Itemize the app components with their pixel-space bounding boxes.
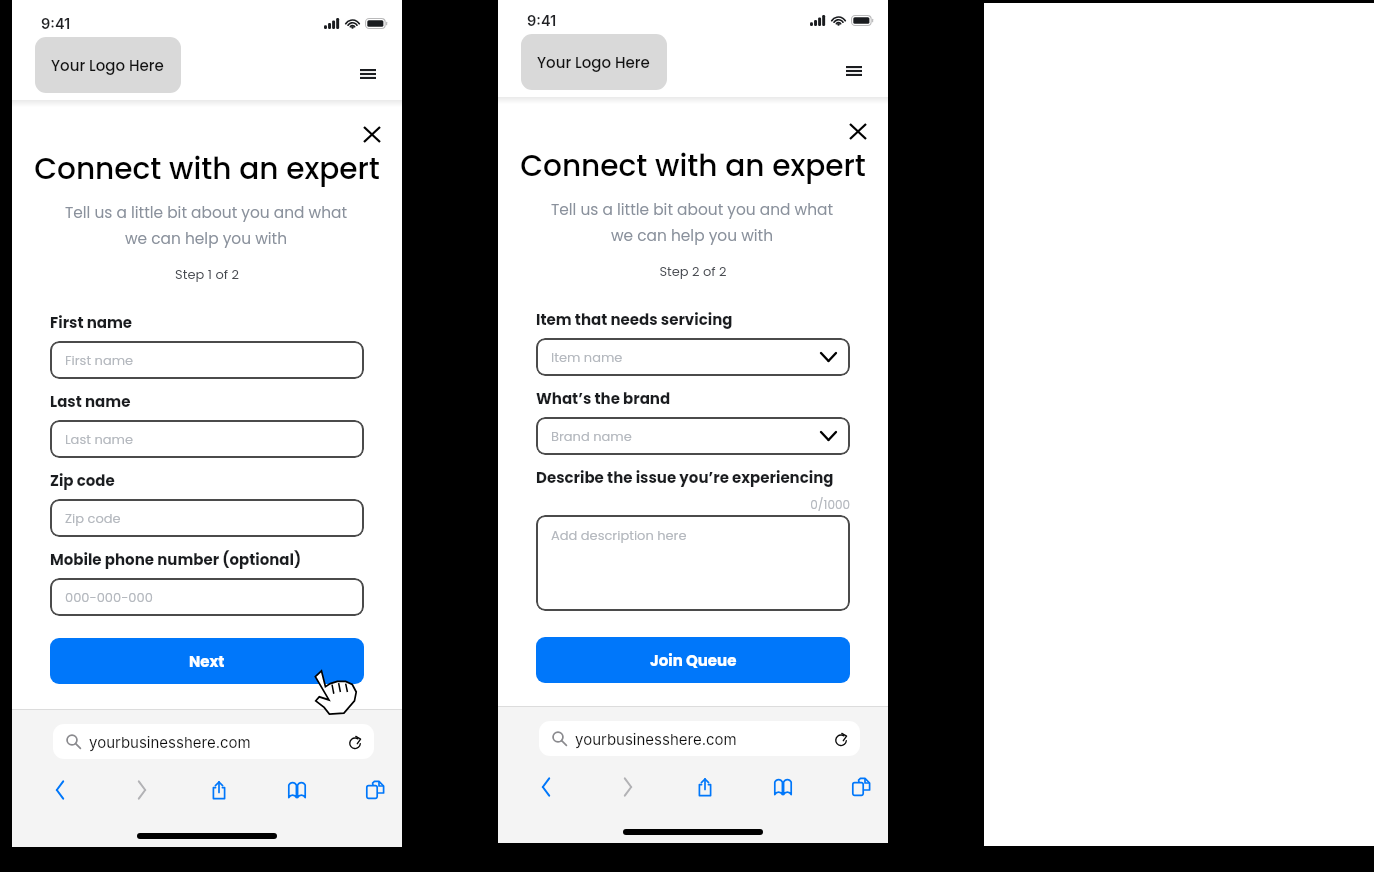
staticText: Your Logo Here [537,52,650,73]
staticText: yourbusinesshere.com [575,730,737,748]
staticText: Step 1 of 2 [12,265,402,283]
button[interactable]: Share [693,775,717,799]
staticText: First name [50,312,133,333]
button[interactable]: Reload [345,731,367,753]
staticText: Next [189,651,225,672]
button[interactable]: Join Queue [536,637,850,683]
button[interactable]: Reload [831,728,853,750]
staticText: Join Queue [650,650,737,671]
button[interactable]: First name [50,341,364,379]
button[interactable]: Brand name [536,417,850,455]
staticText: Last name [65,430,133,448]
staticText: Tell us a little bit about you and what … [543,199,841,246]
button[interactable]: Close [358,120,386,148]
staticText: Tell us a little bit about you and what … [57,202,355,249]
button[interactable]: Bookmarks [771,775,795,799]
staticText: Mobile phone number (optional) [50,549,302,570]
button[interactable]: Close [844,117,872,145]
button[interactable]: Back [534,775,558,799]
staticText: Step 2 of 2 [498,262,888,280]
staticText: Zip code [50,470,115,491]
staticText: Connect with an expert [12,148,402,189]
staticText: Last name [50,391,131,412]
staticText: Add description here [551,526,687,544]
button[interactable]: Your Logo Here [35,37,181,93]
staticText: Item that needs servicing [536,309,733,330]
staticText: Brand name [551,427,632,445]
staticText: 9:41 [41,15,71,33]
button[interactable]: Share [207,778,231,802]
button[interactable]: Menu [353,59,383,89]
button[interactable]: Last name [50,420,364,458]
button[interactable]: Menu [839,56,869,86]
staticText: 000-000-000 [65,588,153,606]
button[interactable]: Back [48,778,72,802]
button[interactable]: yourbusinesshere.com [539,721,860,756]
staticText: 9:41 [527,12,557,30]
staticText: First name [65,351,134,369]
staticText: Your Logo Here [51,55,164,76]
button[interactable]: Item name [536,338,850,376]
button[interactable]: Tabs [363,778,387,802]
button[interactable]: Forward [130,778,154,802]
staticText: yourbusinesshere.com [89,733,251,751]
button[interactable]: 000-000-000 [50,578,364,616]
staticText: What’s the brand [536,388,671,409]
staticText: Describe the issue you’re experiencing [536,467,834,488]
button[interactable]: Next [50,638,364,684]
button[interactable]: Bookmarks [285,778,309,802]
button[interactable]: yourbusinesshere.com [53,724,374,759]
staticText: Zip code [65,509,121,527]
button[interactable]: Zip code [50,499,364,537]
button[interactable]: Your Logo Here [521,34,667,90]
staticText: Item name [551,348,623,366]
button[interactable]: Add description here [536,515,850,611]
button[interactable]: Tabs [849,775,873,799]
staticText: Connect with an expert [498,145,888,186]
staticText: 0/1000 [536,496,850,513]
button[interactable]: Forward [616,775,640,799]
